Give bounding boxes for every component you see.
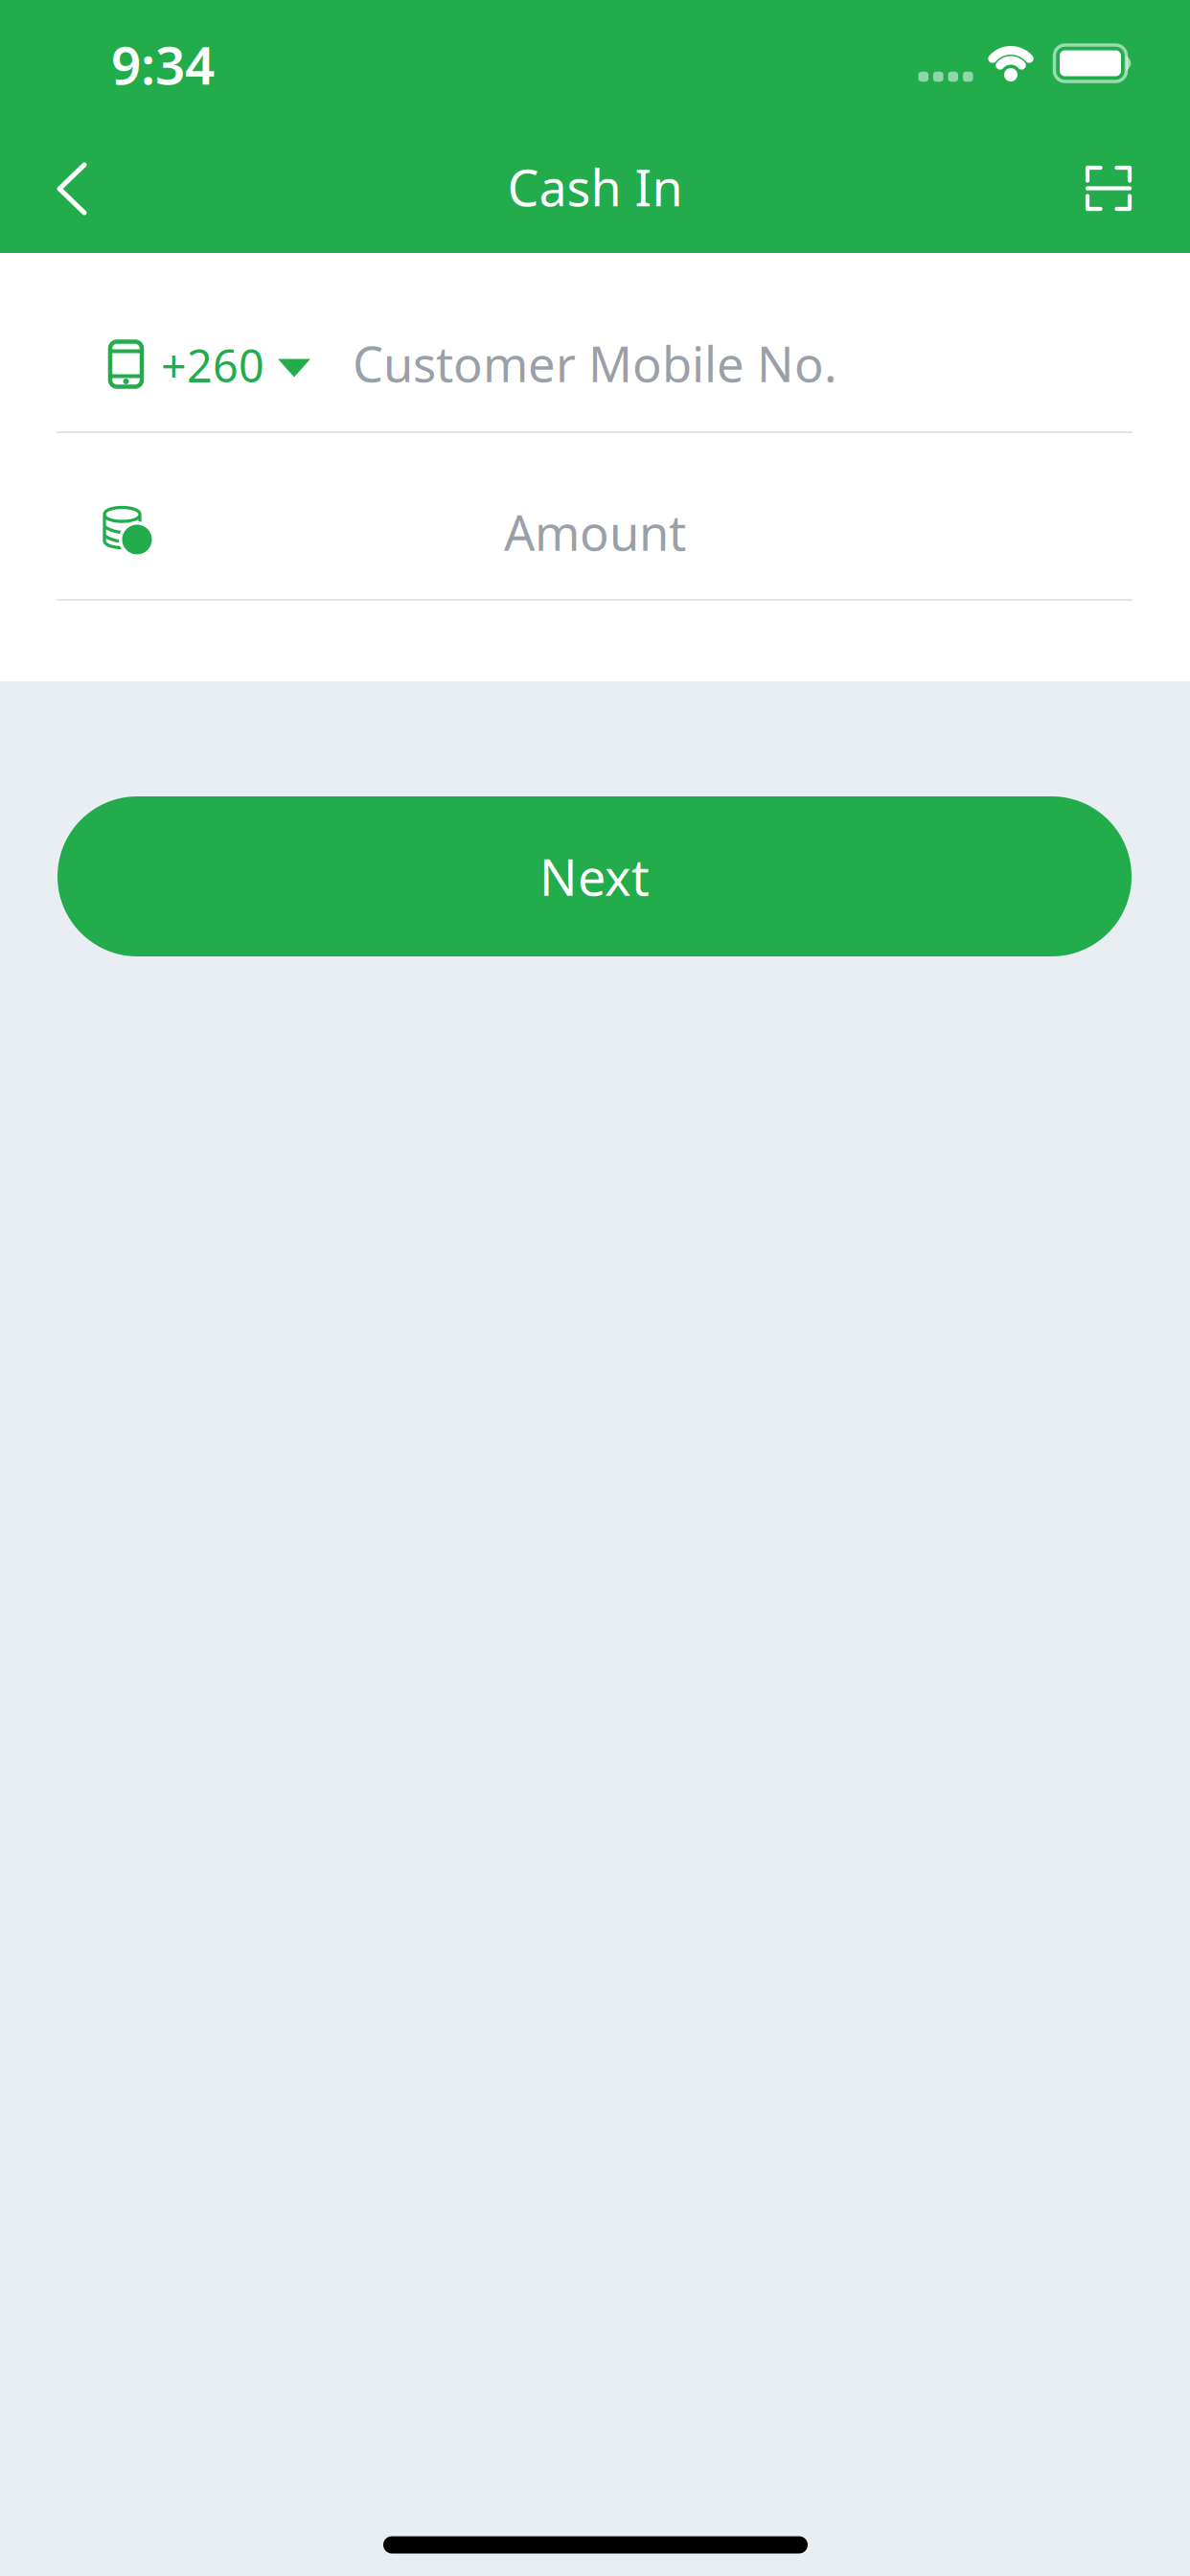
staticText: Amount (504, 500, 686, 564)
button[interactable]: Customer Mobile No. (231, 306, 959, 421)
button[interactable]: Amount (231, 474, 959, 589)
staticText: +260 (161, 335, 264, 395)
staticText: 9:34 (111, 29, 215, 99)
button[interactable]: Next (57, 796, 1132, 956)
staticText: Next (539, 843, 650, 910)
button[interactable]: Select country code (161, 335, 310, 395)
staticText: Cash In (507, 154, 683, 220)
button[interactable]: Scan QR code (1087, 168, 1130, 209)
button[interactable]: Back (59, 165, 84, 213)
staticText: Customer Mobile No. (353, 331, 837, 396)
